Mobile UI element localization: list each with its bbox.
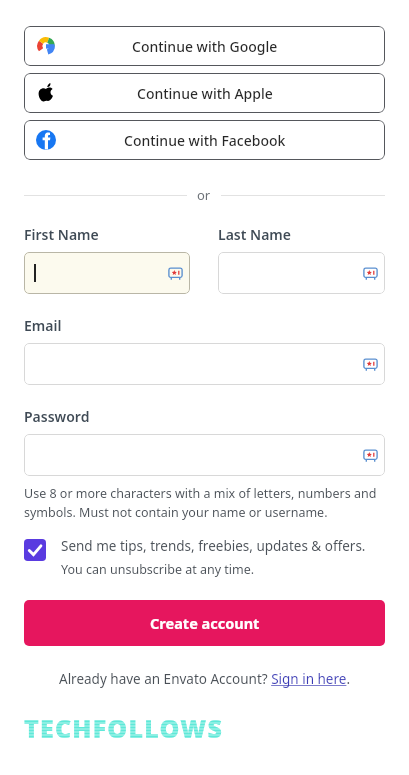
button[interactable]: Password manager bbox=[24, 434, 385, 476]
button[interactable]: Password manager bbox=[24, 343, 385, 385]
staticText: Email bbox=[24, 316, 62, 335]
staticText: Send me tips, trends, freebies, updates … bbox=[61, 537, 366, 555]
staticText: First Name bbox=[24, 225, 99, 244]
other: Password manager bbox=[168, 266, 183, 281]
other: Password manager bbox=[363, 448, 378, 463]
other: Send me tips checkbox bbox=[24, 539, 46, 561]
button[interactable]: Already have an Envato Account? Sign in … bbox=[59, 670, 351, 688]
staticText: Continue with Facebook bbox=[124, 131, 286, 150]
staticText: Password bbox=[24, 407, 90, 426]
button[interactable]: Continue with Google bbox=[24, 26, 385, 66]
staticText: Use 8 or more characters with a mix of l… bbox=[24, 485, 385, 521]
staticText: Continue with Apple bbox=[137, 84, 273, 103]
button[interactable]: Send me tips checkbox bbox=[24, 537, 385, 578]
other: Password manager bbox=[363, 357, 378, 372]
staticText: You can unsubscribe at any time. bbox=[61, 561, 255, 578]
button[interactable]: Create account bbox=[24, 600, 385, 646]
staticText: or bbox=[197, 186, 211, 204]
button[interactable]: Password manager bbox=[24, 252, 190, 294]
staticText: Last Name bbox=[218, 225, 291, 244]
staticText: Create account bbox=[150, 613, 260, 633]
staticText: TECHFOLLOWS bbox=[24, 711, 224, 739]
button[interactable]: Continue with Apple bbox=[24, 73, 385, 113]
staticText: Continue with Google bbox=[132, 37, 278, 56]
button[interactable]: Continue with Facebook bbox=[24, 120, 385, 160]
button[interactable]: Password manager bbox=[218, 252, 385, 294]
other: Password manager bbox=[363, 266, 378, 281]
